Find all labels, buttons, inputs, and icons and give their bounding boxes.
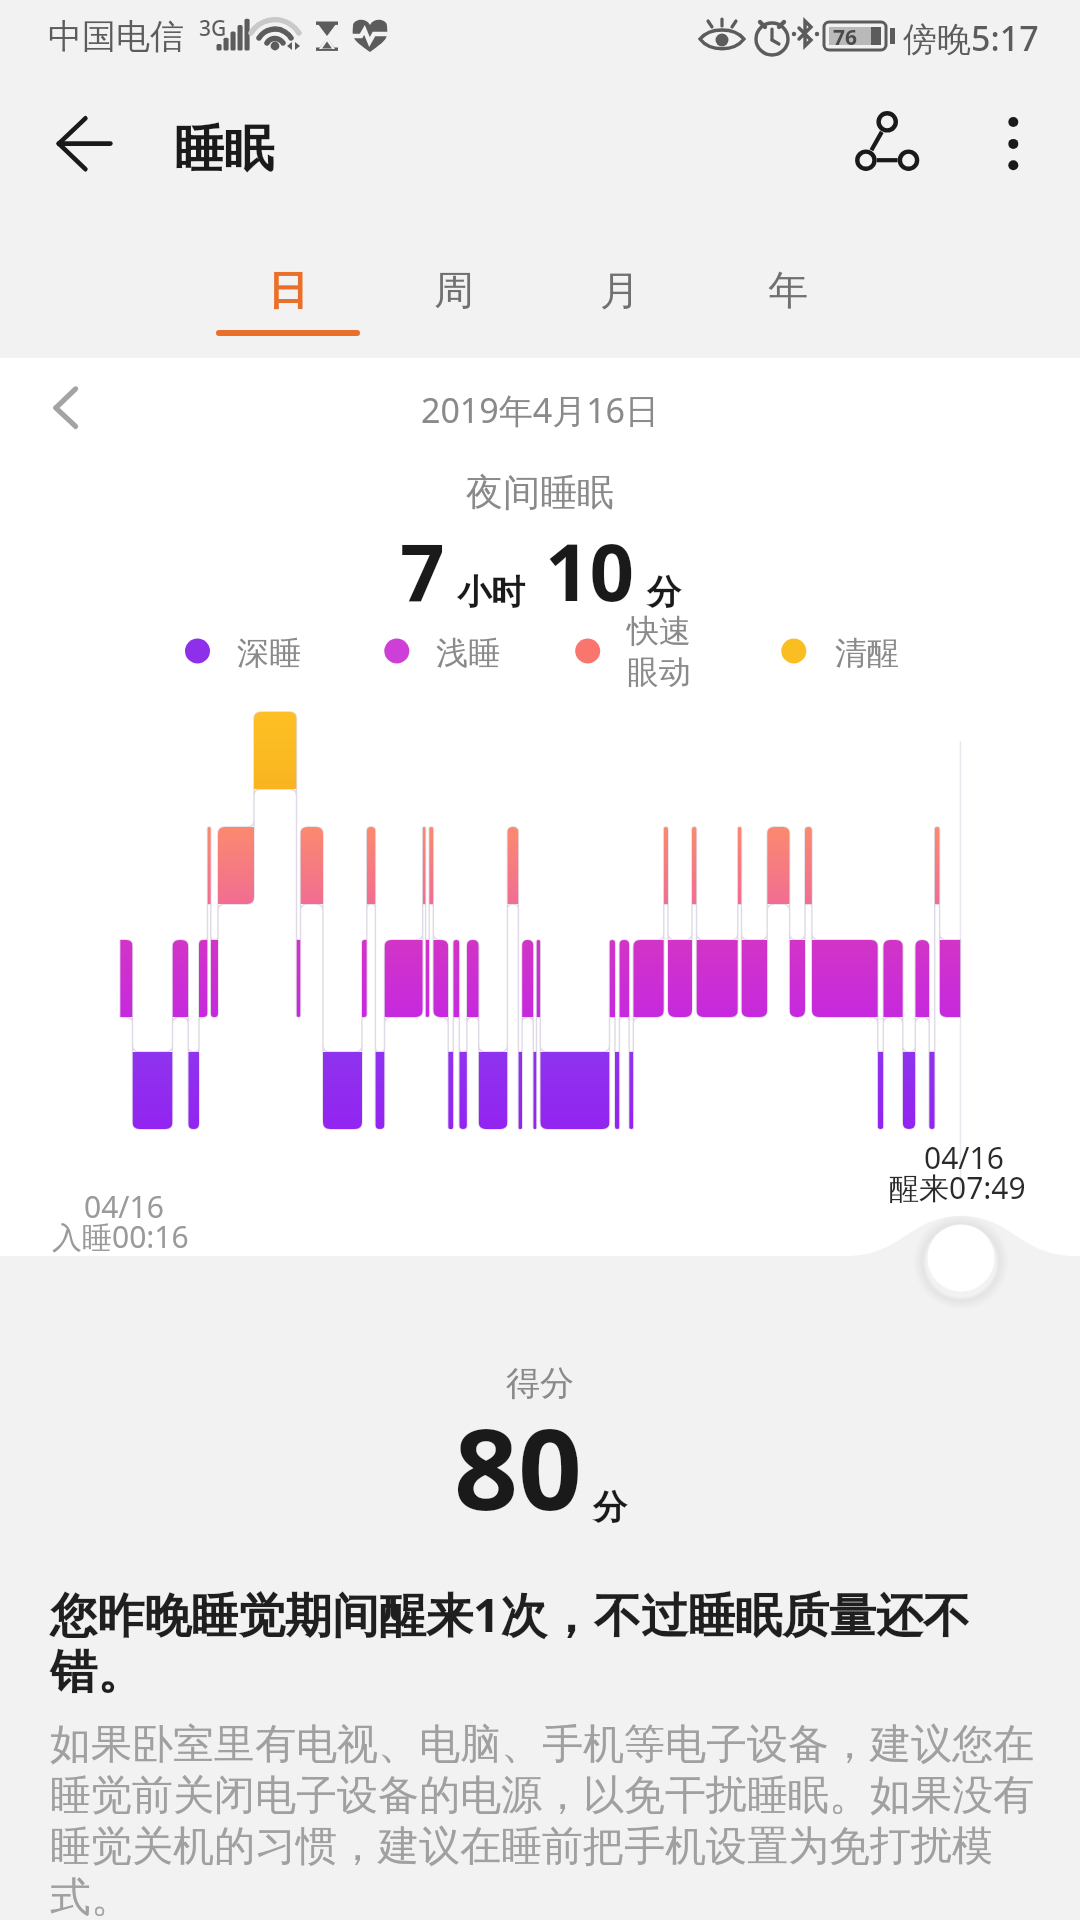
staticText: 04/16	[924, 1137, 1004, 1178]
button[interactable]: 年	[705, 228, 871, 338]
staticText: 日	[268, 265, 308, 315]
button[interactable]: 周	[371, 228, 537, 338]
staticText: 分	[647, 571, 681, 614]
staticText: 您昨晚睡觉期间醒来1次，不过睡眠质量还不错。	[50, 1582, 1025, 1702]
staticText: 入睡00:16	[52, 1216, 189, 1257]
staticText: 分	[593, 1486, 627, 1529]
staticText: 76	[833, 23, 858, 52]
staticText: 清醒	[835, 633, 899, 673]
staticText: 夜间睡眠	[0, 469, 1080, 516]
staticText: 80	[454, 1390, 583, 1543]
staticText: 深睡	[237, 633, 301, 673]
staticText: 年	[768, 265, 808, 315]
staticText: 周	[434, 265, 474, 315]
button[interactable]: More options	[973, 84, 1053, 164]
staticText: 月	[600, 265, 640, 315]
button[interactable]: 月	[537, 228, 703, 338]
staticText: 小时	[457, 571, 525, 614]
staticText: 得分	[0, 1362, 1080, 1405]
button[interactable]: Share	[837, 95, 937, 195]
staticText: 中国电信	[48, 15, 184, 58]
staticText: 04/16	[84, 1186, 164, 1227]
staticText: 10	[545, 518, 635, 624]
staticText: 7	[400, 518, 445, 624]
button[interactable]: Sleep details	[921, 1218, 1001, 1298]
staticText: 浅睡	[436, 633, 500, 673]
staticText: 傍晚5:17	[903, 15, 1039, 61]
staticText: 睡眠	[174, 118, 274, 181]
staticText: 如果卧室里有电视、电脑、手机等电子设备，建议您在睡觉前关闭电子设备的电源，以免干…	[50, 1719, 1035, 1920]
staticText: 醒来07:49	[889, 1167, 1026, 1208]
button[interactable]: Back	[30, 98, 140, 208]
staticText: 2019年4月16日	[0, 387, 1080, 433]
staticText: 3G	[199, 14, 227, 43]
button[interactable]: 日	[205, 228, 371, 338]
staticText: 快速 眼动	[627, 611, 691, 692]
button[interactable]: Previous day	[22, 363, 112, 453]
